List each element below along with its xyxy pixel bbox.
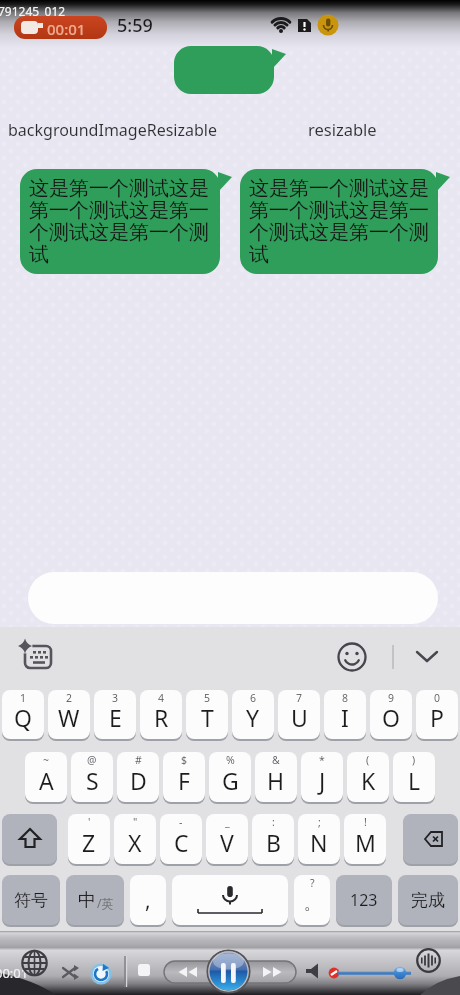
staticText: resizable <box>308 118 377 140</box>
staticText: ) <box>412 753 416 767</box>
button[interactable]: @ <box>71 752 113 802</box>
staticText: 4 <box>158 691 165 705</box>
button[interactable]: 0 <box>416 690 458 739</box>
staticText: Z <box>82 827 96 858</box>
staticText: /英 <box>97 895 114 911</box>
staticText: O <box>382 702 400 733</box>
button[interactable]: 6 <box>232 690 274 739</box>
staticText: U <box>291 702 308 733</box>
button[interactable]: ! <box>344 814 386 864</box>
button[interactable]: 1 <box>2 690 44 739</box>
staticText: M <box>355 827 376 858</box>
button[interactable]: 7 <box>278 690 320 739</box>
button[interactable]: : <box>252 814 294 864</box>
staticText: - <box>179 815 183 829</box>
button[interactable] <box>90 963 112 985</box>
staticText: 00:01 <box>47 19 86 39</box>
staticText: T <box>201 702 214 733</box>
button[interactable]: 123 <box>336 875 392 925</box>
staticText: ( <box>366 753 370 767</box>
staticText: 5:59 <box>117 13 153 38</box>
staticText: 这是第一个测试这是第一个测试这是第一个测试这是第一个测试 <box>29 176 214 267</box>
staticText: " <box>133 815 138 829</box>
button[interactable] <box>138 964 150 976</box>
staticText: F <box>178 765 190 796</box>
staticText: 这是第一个测试这是第一个测试这是第一个测试这是第一个测试 <box>249 176 432 267</box>
button[interactable] <box>166 961 210 983</box>
button[interactable] <box>305 962 343 984</box>
button[interactable] <box>416 948 441 973</box>
button[interactable] <box>18 638 58 678</box>
staticText: @ <box>87 753 97 767</box>
button[interactable] <box>28 572 438 624</box>
button[interactable] <box>62 965 80 980</box>
button[interactable]: 5 <box>186 690 228 739</box>
button[interactable]: 2 <box>48 690 90 739</box>
staticText: _ <box>225 815 230 829</box>
button[interactable]: % <box>209 752 251 802</box>
staticText: Q <box>14 702 32 733</box>
button[interactable]: 4 <box>140 690 182 739</box>
staticText: 符号 <box>14 890 48 911</box>
button[interactable]: - <box>160 814 202 864</box>
button[interactable] <box>21 950 48 977</box>
staticText: 5 <box>204 691 211 705</box>
staticText: 123 <box>350 889 378 911</box>
staticText: 791245_012 <box>0 3 66 19</box>
staticText: L <box>408 765 421 796</box>
staticText: W <box>58 702 80 733</box>
staticText: , <box>145 886 151 915</box>
staticText: 。 <box>304 893 321 914</box>
button[interactable]: 符号 <box>2 875 60 925</box>
staticText: R <box>154 702 169 733</box>
staticText: 1 <box>20 691 27 705</box>
button[interactable]: 9 <box>370 690 412 739</box>
button[interactable] <box>206 949 251 994</box>
staticText: Y <box>246 702 260 733</box>
button[interactable]: , <box>130 875 166 925</box>
button[interactable]: 3 <box>94 690 136 739</box>
button[interactable] <box>172 875 288 925</box>
button[interactable] <box>2 814 57 864</box>
staticText: X <box>128 827 142 858</box>
button[interactable]: $ <box>163 752 205 802</box>
staticText: # <box>135 753 142 767</box>
staticText: J <box>319 765 326 796</box>
button[interactable]: ; <box>298 814 340 864</box>
staticText: 完成 <box>411 890 445 911</box>
button[interactable]: ) <box>393 752 435 802</box>
staticText: P <box>430 702 444 733</box>
staticText: V <box>220 827 234 858</box>
button[interactable]: 8 <box>324 690 366 739</box>
staticText: 9 <box>388 691 395 705</box>
staticText: : <box>272 815 275 829</box>
staticText: E <box>109 702 122 733</box>
staticText: backgroundImageResizable <box>8 119 217 141</box>
staticText: * <box>319 753 325 767</box>
button[interactable]: ( <box>347 752 389 802</box>
button[interactable] <box>337 642 367 672</box>
button[interactable]: & <box>255 752 297 802</box>
staticText: 7 <box>296 691 303 705</box>
button[interactable]: 00:01 <box>14 16 107 39</box>
button[interactable]: ' <box>68 814 110 864</box>
button[interactable]: _ <box>206 814 248 864</box>
button[interactable]: " <box>114 814 156 864</box>
staticText: 8 <box>342 691 349 705</box>
button[interactable] <box>403 814 458 864</box>
staticText: D <box>130 765 147 796</box>
staticText: 3 <box>112 691 119 705</box>
button[interactable] <box>414 648 440 666</box>
button[interactable]: # <box>117 752 159 802</box>
button[interactable]: ? <box>294 875 330 925</box>
staticText: 6 <box>250 691 257 705</box>
button[interactable]: 完成 <box>398 875 458 925</box>
button[interactable]: * <box>301 752 343 802</box>
button[interactable]: ~ <box>25 752 67 802</box>
button[interactable] <box>336 962 416 984</box>
staticText: G <box>222 765 239 796</box>
staticText: ~ <box>43 753 50 767</box>
button[interactable]: 中 <box>66 875 124 925</box>
button[interactable] <box>250 961 294 983</box>
staticText: S <box>86 765 99 796</box>
